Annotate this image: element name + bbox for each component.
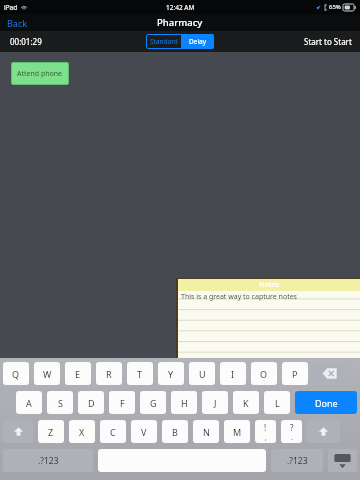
staticText: N (203, 426, 210, 438)
staticText: K (243, 397, 249, 409)
button[interactable]: Delay (181, 34, 214, 49)
button[interactable]: Notes (178, 279, 360, 358)
staticText: G (150, 397, 157, 409)
staticText: B (172, 426, 178, 438)
staticText: J (214, 397, 217, 409)
button[interactable]: H (171, 391, 197, 414)
button[interactable]: I (220, 362, 246, 385)
button[interactable]: T (127, 362, 153, 385)
staticText: A (26, 397, 32, 409)
button[interactable]: L (264, 391, 290, 414)
button[interactable]: Hide keyboard (328, 449, 357, 472)
staticText: S (58, 397, 63, 409)
staticText: E (75, 368, 81, 380)
staticText: , (265, 433, 267, 442)
staticText: M (233, 426, 242, 438)
button[interactable]: .?123 (271, 449, 323, 472)
staticText: P (292, 368, 298, 380)
staticText: Y (168, 368, 174, 380)
button[interactable]: U (189, 362, 215, 385)
button[interactable]: X (69, 420, 95, 443)
staticText: Pharmacy (157, 16, 203, 29)
staticText: ? (290, 422, 294, 433)
button[interactable]: Attend phone (11, 62, 69, 85)
staticText: Start to Start (304, 36, 352, 47)
button[interactable]: J (202, 391, 228, 414)
staticText: Done (315, 397, 338, 409)
button[interactable]: ? (281, 420, 302, 443)
staticText: R (106, 368, 112, 380)
staticText: Attend phone (17, 69, 63, 79)
staticText: V (141, 426, 147, 438)
staticText: W (43, 368, 52, 380)
staticText: L (275, 397, 280, 409)
button[interactable]: Y (158, 362, 184, 385)
button[interactable]: Start to Start (304, 31, 352, 52)
staticText: H (181, 397, 188, 409)
button[interactable]: O (251, 362, 277, 385)
staticText: F (120, 397, 125, 409)
button[interactable]: Done (295, 391, 357, 414)
staticText: Notes (259, 280, 279, 290)
staticText: Back (7, 17, 28, 29)
staticText: 65% (329, 3, 341, 11)
staticText: iPad (4, 3, 18, 12)
staticText: Delay (189, 37, 207, 46)
button[interactable]: .?123 (3, 449, 93, 472)
staticText: T (137, 368, 143, 380)
button[interactable]: Shift (307, 420, 340, 443)
staticText: 00:01:29 (10, 36, 42, 47)
staticText: C (110, 426, 116, 438)
staticText: X (79, 426, 85, 438)
button[interactable]: N (193, 420, 219, 443)
button[interactable]: V (131, 420, 157, 443)
button[interactable]: Standard (146, 34, 181, 49)
staticText: . (291, 433, 293, 442)
button[interactable]: D (78, 391, 104, 414)
staticText: I (231, 368, 235, 380)
button[interactable]: Shift (3, 420, 33, 443)
staticText: U (199, 368, 206, 380)
staticText: Z (48, 426, 54, 438)
button[interactable]: C (100, 420, 126, 443)
button[interactable]: B (162, 420, 188, 443)
staticText: .?123 (38, 455, 59, 467)
button[interactable]: F (109, 391, 135, 414)
staticText: This is a great way to capture notes (181, 292, 297, 302)
staticText: D (88, 397, 95, 409)
button[interactable]: Q (3, 362, 29, 385)
button[interactable]: K (233, 391, 259, 414)
button[interactable]: Z (38, 420, 64, 443)
button[interactable]: E (65, 362, 91, 385)
button[interactable]: W (34, 362, 60, 385)
button[interactable]: M (224, 420, 250, 443)
button[interactable]: S (47, 391, 73, 414)
button[interactable]: Backspace (313, 362, 345, 385)
staticText: .?123 (287, 455, 308, 467)
button[interactable]: R (96, 362, 122, 385)
staticText: Standard (150, 37, 178, 46)
button[interactable]: Back (7, 14, 28, 31)
staticText: 12:42 AM (166, 3, 195, 12)
button[interactable]: P (282, 362, 308, 385)
staticText: Q (12, 368, 20, 380)
staticText: O (260, 368, 268, 380)
staticText: ! (264, 422, 267, 433)
button[interactable]: ! (255, 420, 276, 443)
button[interactable]: G (140, 391, 166, 414)
button[interactable]: A (16, 391, 42, 414)
